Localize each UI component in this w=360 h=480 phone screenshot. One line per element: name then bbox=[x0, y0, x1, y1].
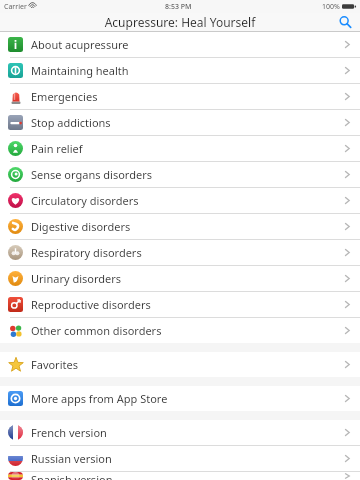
staticText: 100% bbox=[322, 2, 340, 12]
staticText: Other common disorders bbox=[31, 323, 344, 338]
button[interactable]: About acupressure bbox=[0, 32, 360, 57]
staticText: Sense organs disorders bbox=[31, 167, 344, 182]
button[interactable]: Reproductive disorders bbox=[0, 292, 360, 317]
staticText: Pain relief bbox=[31, 141, 344, 156]
button[interactable]: Favorites bbox=[0, 352, 360, 377]
button[interactable]: Sense organs disorders bbox=[0, 162, 360, 187]
button[interactable]: Spanish version bbox=[0, 472, 360, 480]
staticText: French version bbox=[31, 425, 344, 440]
staticText: Carrier bbox=[4, 2, 27, 12]
button[interactable]: Emergencies bbox=[0, 84, 360, 109]
button[interactable]: More apps from App Store bbox=[0, 386, 360, 411]
button[interactable]: Urinary disorders bbox=[0, 266, 360, 291]
staticText: More apps from App Store bbox=[31, 391, 344, 406]
staticText: Emergencies bbox=[31, 89, 344, 104]
button[interactable]: Other common disorders bbox=[0, 318, 360, 343]
staticText: 8:53 PM bbox=[165, 2, 192, 12]
button[interactable]: Digestive disorders bbox=[0, 214, 360, 239]
staticText: Acupressure: Heal Yourself bbox=[0, 14, 360, 30]
staticText: Maintaining health bbox=[31, 63, 344, 78]
button[interactable]: Pain relief bbox=[0, 136, 360, 161]
staticText: Urinary disorders bbox=[31, 271, 344, 286]
button[interactable]: Respiratory disorders bbox=[0, 240, 360, 265]
button[interactable]: Maintaining health bbox=[0, 58, 360, 83]
staticText: About acupressure bbox=[31, 37, 344, 52]
staticText: Respiratory disorders bbox=[31, 245, 344, 260]
button[interactable]: French version bbox=[0, 420, 360, 445]
staticText: Digestive disorders bbox=[31, 219, 344, 234]
staticText: Favorites bbox=[31, 357, 344, 372]
button[interactable]: Russian version bbox=[0, 446, 360, 471]
button[interactable]: Circulatory disorders bbox=[0, 188, 360, 213]
button[interactable]: Stop addictions bbox=[0, 110, 360, 135]
staticText: Reproductive disorders bbox=[31, 297, 344, 312]
staticText: Stop addictions bbox=[31, 115, 344, 130]
staticText: Russian version bbox=[31, 451, 344, 466]
staticText: Circulatory disorders bbox=[31, 193, 344, 208]
button[interactable]: Search bbox=[330, 13, 360, 31]
staticText: Spanish version bbox=[31, 472, 344, 480]
